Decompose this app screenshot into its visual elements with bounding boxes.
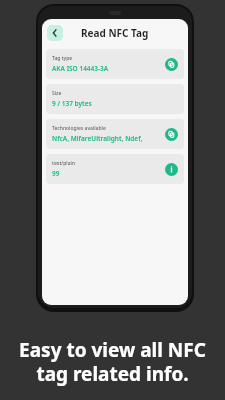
button[interactable]: Copy	[165, 128, 178, 141]
button[interactable]: text/plain	[46, 154, 184, 184]
staticText: Size	[52, 90, 62, 97]
staticText: 99	[52, 169, 60, 178]
button[interactable]: Info	[165, 163, 178, 176]
staticText: NfcA, MifareUltralight, Ndef,	[52, 134, 143, 143]
button[interactable]: Technologies available	[46, 119, 184, 149]
button[interactable]: Copy	[165, 58, 178, 71]
staticText: Easy to view all NFC tag related info.	[19, 337, 206, 386]
button[interactable]: Size	[46, 84, 184, 114]
staticText: Read NFC Tag	[81, 26, 149, 40]
staticText: Technologies available	[52, 125, 106, 132]
staticText: text/plain	[52, 160, 76, 167]
staticText: Tag type	[52, 55, 73, 62]
button[interactable]: Tag type	[46, 49, 184, 79]
staticText: 9 / 137 bytes	[52, 99, 92, 108]
button[interactable]: Back	[47, 25, 63, 41]
staticText: AKA ISO 14443-3A	[52, 64, 109, 73]
